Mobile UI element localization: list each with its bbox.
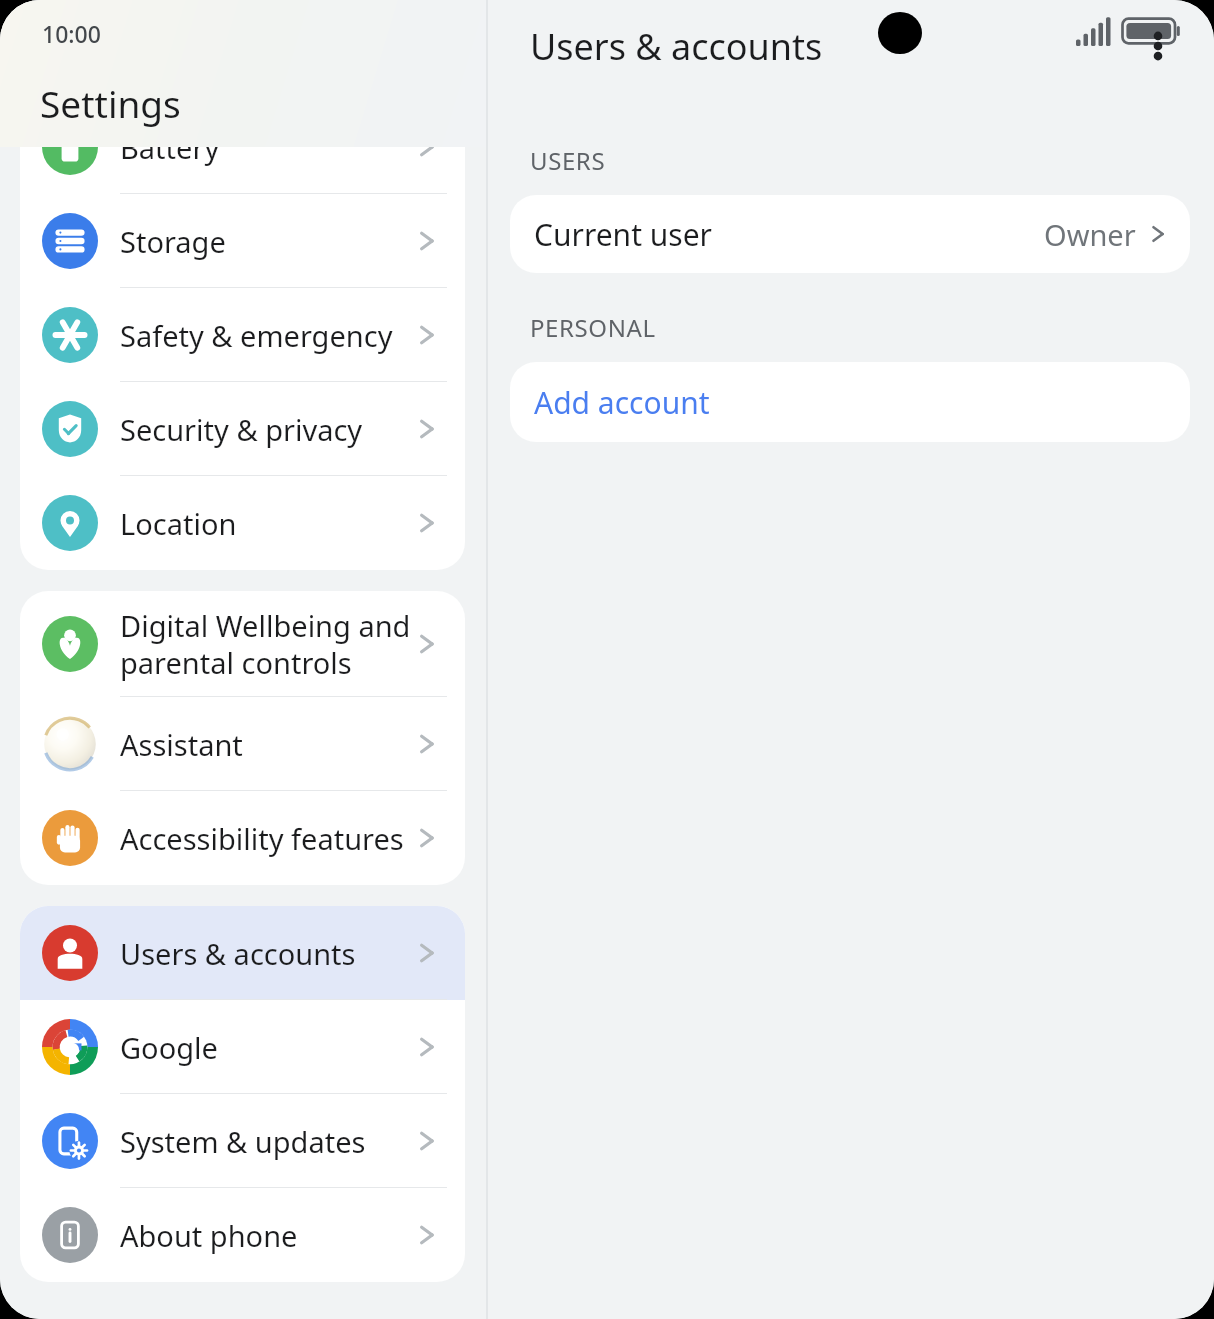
- staticText: Battery: [120, 128, 413, 167]
- staticText: Safety & emergency: [120, 316, 413, 355]
- button[interactable]: Security & privacy: [20, 382, 465, 476]
- button[interactable]: Accessibility features: [20, 791, 465, 885]
- button[interactable]: Assistant: [20, 697, 465, 791]
- button[interactable]: More options: [1130, 18, 1186, 74]
- staticText: About phone: [120, 1216, 413, 1255]
- staticText: Current user: [534, 214, 1044, 255]
- button[interactable]: About phone: [20, 1188, 465, 1282]
- staticText: Storage: [120, 222, 413, 261]
- staticText: USERS: [530, 144, 606, 177]
- button[interactable]: Google: [20, 1000, 465, 1094]
- staticText: Digital Wellbeing and parental controls: [120, 606, 413, 683]
- staticText: Add account: [534, 382, 710, 423]
- staticText: PERSONAL: [530, 311, 656, 344]
- button[interactable]: Digital Wellbeing and parental controls: [20, 591, 465, 697]
- staticText: Security & privacy: [120, 410, 413, 449]
- staticText: Settings: [40, 78, 181, 128]
- staticText: Owner: [1044, 215, 1136, 254]
- staticText: Accessibility features: [120, 819, 413, 858]
- button[interactable]: Current user: [510, 195, 1190, 273]
- button[interactable]: Storage: [20, 194, 465, 288]
- staticText: Assistant: [120, 725, 413, 764]
- staticText: Location: [120, 504, 413, 543]
- staticText: Users & accounts: [530, 22, 823, 71]
- button[interactable]: Users & accounts: [20, 906, 465, 1000]
- button[interactable]: Battery: [20, 100, 465, 194]
- staticText: Google: [120, 1028, 413, 1067]
- button[interactable]: Add account: [510, 362, 1190, 442]
- staticText: System & updates: [120, 1122, 413, 1161]
- staticText: 10:00: [42, 18, 101, 49]
- button[interactable]: System & updates: [20, 1094, 465, 1188]
- button[interactable]: Location: [20, 476, 465, 570]
- staticText: Users & accounts: [120, 934, 413, 973]
- button[interactable]: Safety & emergency: [20, 288, 465, 382]
